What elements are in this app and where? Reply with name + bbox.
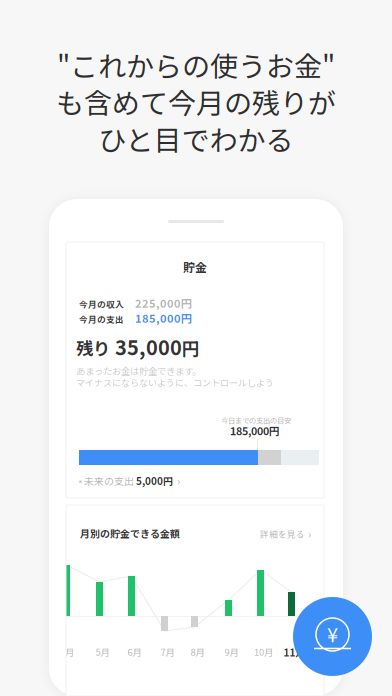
staticText: も含めて今月の残りが (56, 81, 336, 122)
staticText: あまったお金は貯金できます。 (76, 364, 201, 377)
staticText: "これからの使うお金" (57, 44, 335, 85)
staticText: 月 (65, 645, 74, 658)
staticText: 225,000円 (135, 295, 192, 311)
staticText: 185,000円 (230, 423, 280, 438)
button[interactable]: 詳細を見る (260, 526, 311, 541)
staticText: 5月 (95, 645, 109, 658)
staticText: 9月 (224, 645, 238, 658)
staticText: 月別の貯金できる金額 (80, 526, 180, 540)
staticText: 10月 (254, 645, 273, 658)
staticText: 35,000 (110, 332, 182, 361)
staticText: 6月 (127, 645, 141, 658)
button[interactable]: Add entry (293, 597, 372, 676)
staticText: › (173, 473, 180, 488)
staticText: 8月 (190, 645, 204, 658)
staticText: 今月の支出 (79, 313, 124, 325)
staticText: 円 (182, 335, 199, 360)
staticText: 詳細を見る (260, 527, 305, 540)
staticText: 11月 (283, 645, 305, 659)
staticText: 7月 (160, 645, 174, 658)
staticText: ひと目でわかる (98, 118, 293, 159)
staticText: 未来の支出 (82, 473, 136, 488)
staticText: › (308, 526, 311, 541)
staticText: 185,000円 (135, 310, 192, 326)
staticText: 今月の収入 (79, 298, 124, 310)
staticText: 残り (76, 335, 110, 360)
staticText: 貯金 (183, 258, 207, 275)
staticText: 今日までの支出の目安 (221, 415, 291, 426)
staticText: ¥ (327, 619, 338, 648)
staticText: マイナスにならないように、コントロールしよう (76, 376, 274, 389)
staticText: 5,000円 (136, 473, 173, 488)
